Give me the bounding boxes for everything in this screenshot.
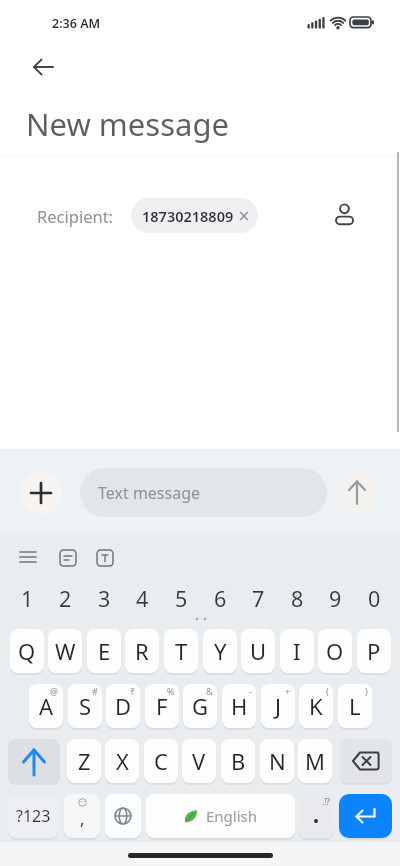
staticText: %	[167, 685, 175, 697]
button[interactable]: ,	[64, 794, 100, 838]
staticText: G	[192, 691, 209, 721]
staticText: )	[365, 685, 368, 697]
staticText: A	[39, 691, 54, 721]
button[interactable]: N	[260, 739, 294, 783]
button[interactable]	[330, 194, 360, 236]
staticText: -	[249, 685, 252, 697]
staticText: 1	[21, 584, 34, 610]
staticText: Q	[18, 636, 36, 666]
staticText: J	[275, 691, 282, 721]
button[interactable]	[340, 739, 392, 783]
button[interactable]: G	[183, 684, 217, 728]
staticText: 7	[252, 584, 265, 610]
staticText: R	[135, 636, 149, 666]
button[interactable]: 8	[280, 584, 314, 610]
button[interactable]: 5	[164, 584, 198, 610]
button[interactable]	[25, 50, 61, 84]
button[interactable]: T	[164, 629, 198, 673]
staticText: #	[92, 685, 98, 697]
staticText: O	[326, 636, 344, 666]
button[interactable]	[8, 739, 60, 783]
button[interactable]: J	[261, 684, 295, 728]
button[interactable]: 3	[87, 584, 121, 610]
staticText: Recipient:	[37, 205, 114, 227]
staticText: 18730218809	[142, 206, 234, 226]
button[interactable]: X	[105, 739, 139, 783]
staticText: I	[293, 636, 301, 666]
button[interactable]	[20, 472, 62, 514]
button[interactable]: W	[48, 629, 82, 673]
staticText: U	[250, 636, 267, 666]
staticText: P	[367, 636, 381, 666]
staticText: English	[206, 806, 258, 826]
staticText: 8	[291, 584, 304, 610]
staticText: 2	[59, 584, 72, 610]
button[interactable]: M	[298, 739, 332, 783]
button[interactable]: D	[106, 684, 140, 728]
button[interactable]: 7	[241, 584, 275, 610]
staticText: T	[175, 636, 188, 666]
staticText: 3	[98, 584, 111, 610]
staticText: Text message	[98, 482, 201, 504]
staticText: H	[231, 691, 248, 721]
staticText: 9	[329, 584, 342, 610]
button[interactable]: F	[145, 684, 179, 728]
button[interactable]: O	[318, 629, 352, 673]
staticText: New message	[26, 103, 229, 145]
staticText: E	[98, 636, 111, 666]
button[interactable]: 0	[357, 584, 391, 610]
staticText: 0	[368, 584, 381, 610]
staticText: Y	[214, 636, 227, 666]
staticText: S	[79, 691, 92, 721]
button[interactable]: ?123	[8, 794, 58, 838]
button[interactable]: Z	[67, 739, 101, 783]
staticText: ₹	[130, 685, 136, 697]
staticText: +	[285, 685, 291, 697]
staticText: 4	[136, 584, 149, 610]
button[interactable]: Y	[203, 629, 237, 673]
button[interactable]: 6	[203, 584, 237, 610]
staticText: N	[269, 746, 286, 776]
staticText: W	[55, 636, 76, 666]
button[interactable]: A	[29, 684, 63, 728]
staticText: @	[50, 685, 59, 697]
button[interactable]: C	[144, 739, 178, 783]
button[interactable]: Text message	[80, 468, 327, 517]
staticText: K	[309, 691, 323, 721]
button[interactable]	[105, 794, 141, 838]
button[interactable]: L	[338, 684, 372, 728]
button[interactable]: 2	[48, 584, 82, 610]
staticText: .!?	[322, 796, 330, 807]
button[interactable]: H	[222, 684, 256, 728]
staticText: F	[156, 691, 168, 721]
button[interactable]: E	[87, 629, 121, 673]
button[interactable]: S	[68, 684, 102, 728]
staticText: 5	[175, 584, 188, 610]
button[interactable]: 9	[318, 584, 352, 610]
button[interactable]: P	[357, 629, 391, 673]
button[interactable]: K	[299, 684, 333, 728]
staticText: ?123	[16, 805, 51, 827]
staticText: ,	[80, 807, 85, 830]
button[interactable]: English	[146, 794, 295, 838]
staticText: B	[231, 746, 246, 776]
staticText: Z	[78, 746, 91, 776]
staticText: L	[349, 691, 361, 721]
button[interactable]	[336, 472, 378, 514]
button[interactable]: .!?	[298, 794, 334, 838]
staticText: D	[115, 691, 132, 721]
staticText: 2:36 AM	[52, 15, 101, 32]
button[interactable]: I	[280, 629, 314, 673]
button[interactable]: U	[241, 629, 275, 673]
button[interactable]: 4	[125, 584, 159, 610]
button[interactable]: R	[125, 629, 159, 673]
staticText: 6	[214, 584, 227, 610]
staticText: M	[305, 746, 325, 776]
button[interactable]: B	[221, 739, 255, 783]
button[interactable]: 18730218809	[131, 198, 258, 233]
button[interactable]: 1	[10, 584, 44, 610]
button[interactable]	[339, 794, 392, 838]
button[interactable]: Q	[10, 629, 44, 673]
button[interactable]: V	[182, 739, 216, 783]
staticText: X	[116, 746, 129, 776]
